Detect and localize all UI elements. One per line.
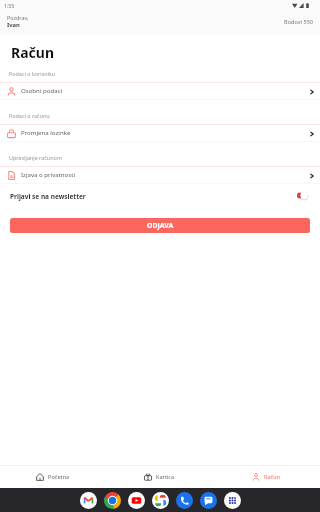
other: Open	[309, 131, 315, 137]
button[interactable]: Izjava o privatnosti	[0, 167, 320, 183]
button[interactable]: YouTube	[128, 492, 145, 509]
staticText: Kartica	[156, 473, 175, 481]
staticText: Račun	[11, 43, 54, 62]
staticText: 1:55	[4, 2, 15, 9]
staticText: Izjava o privatnosti	[21, 170, 75, 178]
button[interactable]: Chrome	[104, 492, 121, 509]
button[interactable]: Phone	[176, 492, 193, 509]
button[interactable]: Račun	[213, 466, 320, 488]
button[interactable]: Messages	[200, 492, 217, 509]
other: Open	[309, 173, 315, 179]
other: Open	[309, 89, 315, 95]
staticText: Podaci o korisniku	[9, 70, 56, 77]
staticText: Pozdrav,	[7, 14, 29, 21]
staticText: ODJAVA	[147, 221, 174, 230]
button[interactable]: Početna	[0, 466, 106, 488]
staticText: Promjena lozinke	[21, 128, 71, 136]
button[interactable]: All apps	[224, 492, 241, 509]
staticText: Prijavi se na newsletter	[10, 192, 86, 201]
button[interactable]: Osobni podaci	[0, 83, 320, 99]
button[interactable]: Promjena lozinke	[0, 125, 320, 141]
button[interactable]: Photos	[152, 492, 169, 509]
button[interactable]: Gmail	[80, 492, 97, 509]
staticText: Osobni podaci	[21, 86, 63, 94]
staticText: Podaci o računu	[9, 112, 50, 119]
staticText: Početna	[48, 473, 70, 481]
staticText: Račun	[264, 473, 281, 481]
button[interactable]: Kartica	[106, 466, 213, 488]
staticText: Ivan	[7, 21, 20, 29]
button[interactable]: ODJAVA	[10, 218, 310, 233]
staticText: Upravljanje računom	[9, 154, 62, 161]
staticText: Bodovi 550	[284, 18, 314, 26]
button[interactable]: Newsletter toggle	[297, 189, 311, 202]
